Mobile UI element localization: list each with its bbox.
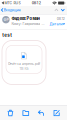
button[interactable]: Reply [36, 106, 46, 120]
staticText: Детали [49, 22, 62, 26]
staticText: Фадеев Роман [11, 16, 40, 21]
staticText: МТС RUS [4, 1, 20, 5]
button[interactable]: Next message [60, 6, 66, 14]
button[interactable]: Previous message [53, 6, 60, 14]
button[interactable]: Compose [52, 106, 62, 120]
button[interactable]: Отчёт за апрель.pdf [2, 40, 46, 84]
staticText: Отчёт за апрель.pdf [8, 62, 40, 66]
button[interactable]: Детали [49, 22, 65, 26]
staticText: Кому: Гаврилова Ольга [11, 21, 46, 26]
button[interactable]: Move to folder [21, 106, 31, 120]
staticText: ФР [3, 18, 8, 22]
staticText: 08:12 [57, 16, 65, 21]
staticText: Входящие [4, 8, 21, 12]
button[interactable]: Delete [5, 106, 15, 120]
staticText: test [2, 32, 12, 38]
staticText: 08:12 [32, 1, 41, 5]
button[interactable]: Входящие [0, 6, 22, 14]
staticText: 118 КБ [19, 67, 28, 71]
